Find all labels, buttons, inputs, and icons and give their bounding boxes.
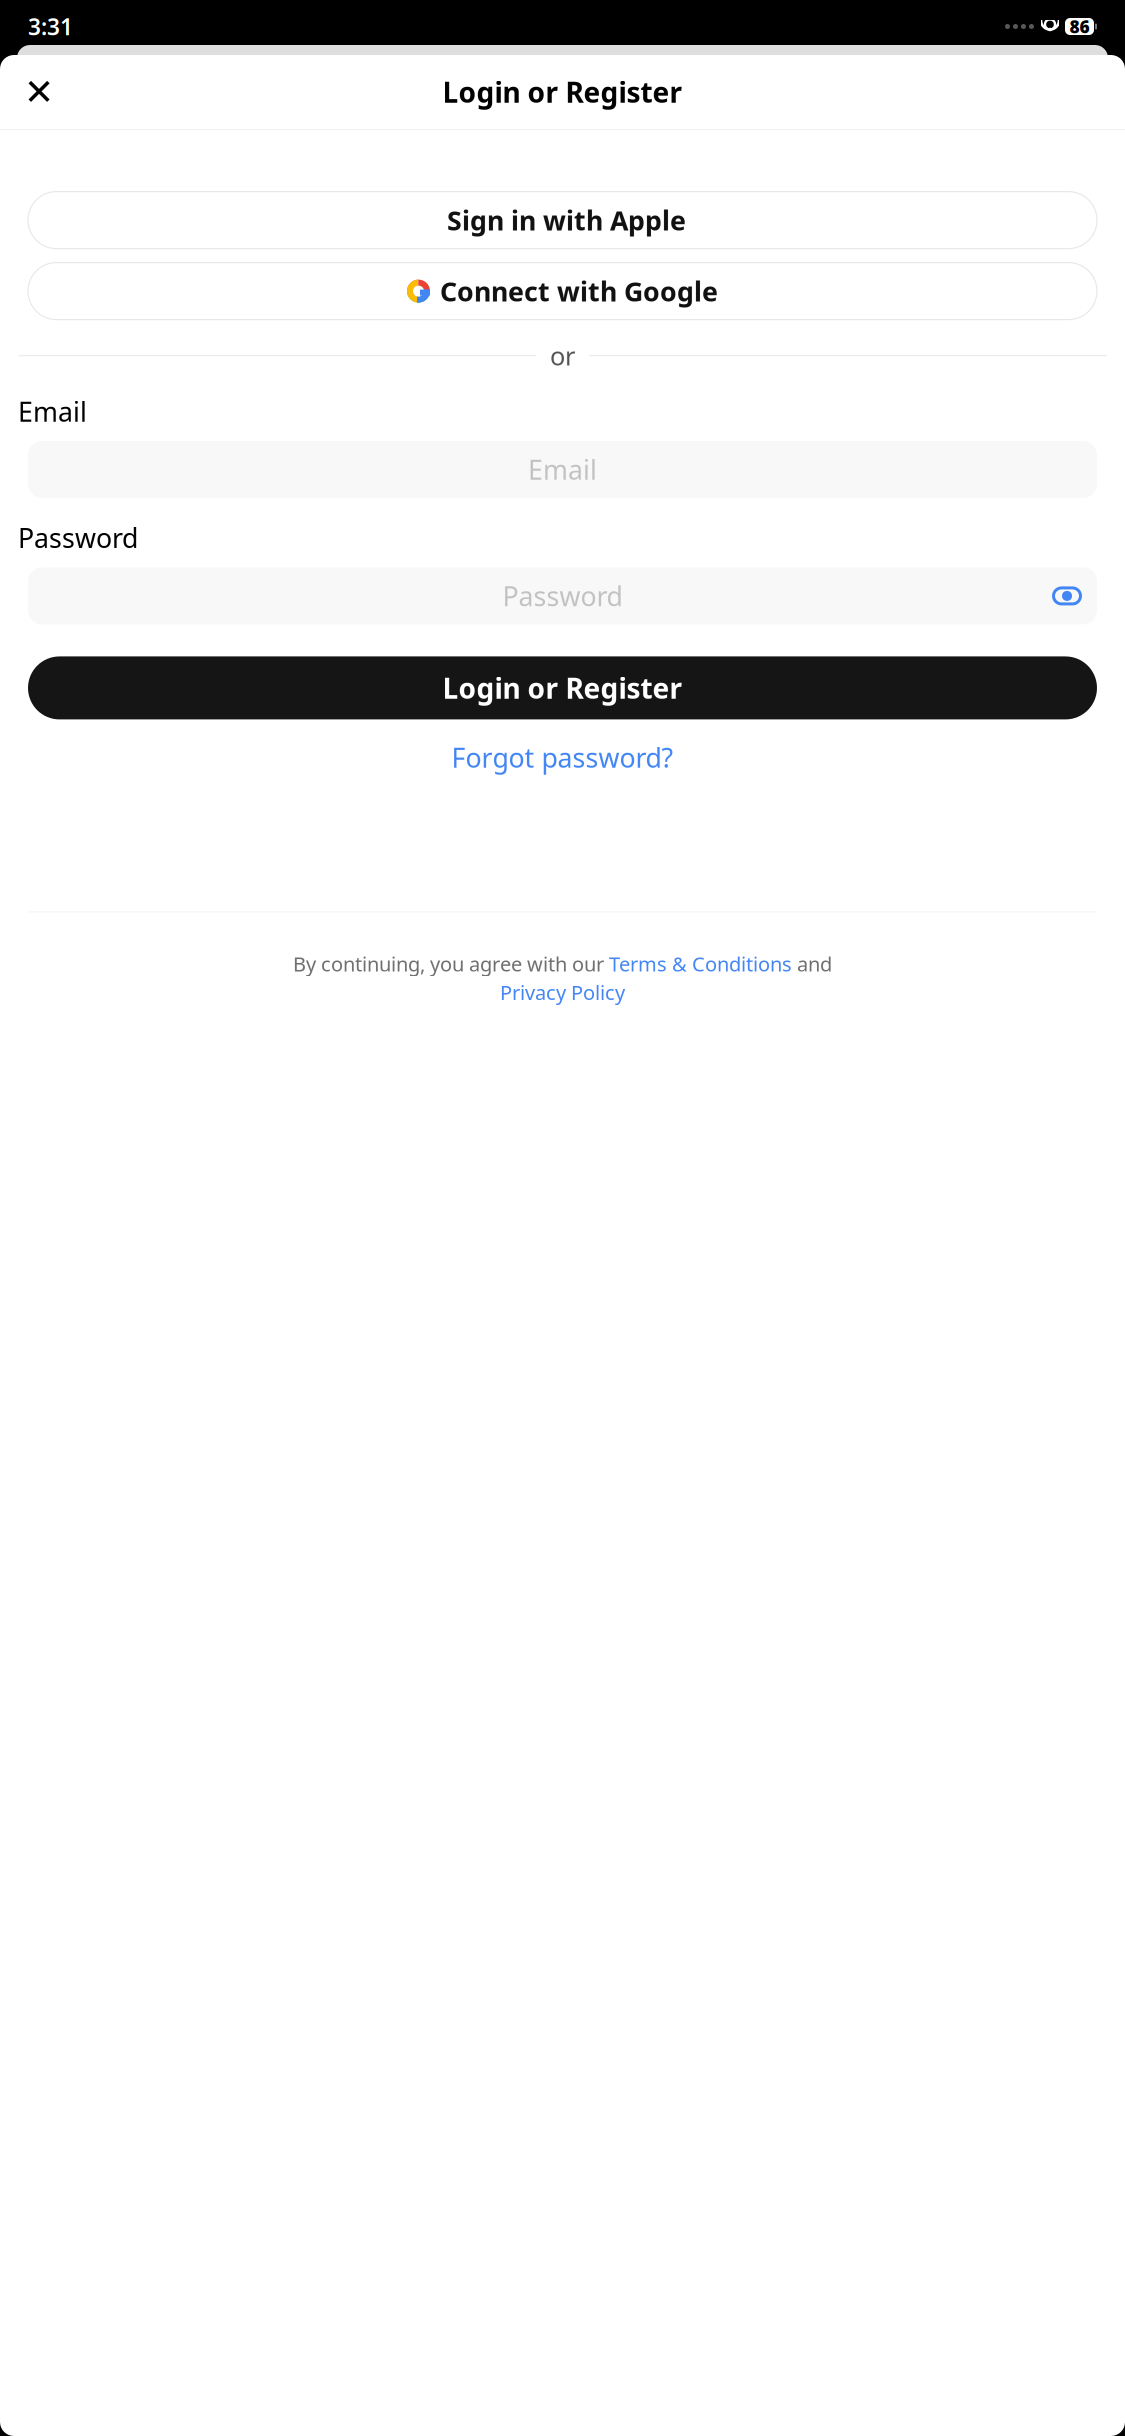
button[interactable]: Forgot password? bbox=[451, 735, 673, 779]
staticText: By continuing, you agree with our bbox=[293, 950, 609, 977]
staticText: Login or Register bbox=[442, 73, 682, 111]
button[interactable]: Login or Register bbox=[28, 656, 1097, 719]
staticText: ✕ bbox=[24, 72, 54, 112]
button[interactable]: Close bbox=[17, 70, 61, 114]
staticText: Forgot password? bbox=[451, 740, 673, 775]
button[interactable] bbox=[28, 192, 1097, 249]
staticText: Login or Register bbox=[442, 669, 682, 706]
staticText: Privacy Policy bbox=[500, 979, 625, 1006]
button[interactable]: Connect with Google bbox=[28, 263, 1097, 320]
staticText: 86 bbox=[1069, 15, 1089, 38]
staticText: Email bbox=[528, 452, 597, 487]
button[interactable]: Privacy Policy bbox=[500, 979, 625, 1006]
button[interactable]: Show password bbox=[1045, 574, 1089, 618]
staticText: and bbox=[792, 950, 832, 977]
staticText: Password bbox=[18, 520, 138, 555]
staticText: Email bbox=[18, 394, 87, 429]
staticText: Password bbox=[502, 578, 622, 614]
button[interactable]: Password bbox=[28, 567, 1097, 624]
button[interactable]: Terms & Conditions bbox=[609, 950, 792, 977]
staticText: Terms & Conditions bbox=[609, 950, 792, 977]
staticText: or bbox=[550, 339, 575, 372]
button[interactable]: Email bbox=[28, 441, 1097, 498]
staticText: Connect with Google bbox=[440, 273, 718, 309]
staticText: 3:31 bbox=[28, 11, 73, 41]
staticText: Sign in with Apple bbox=[447, 202, 686, 238]
